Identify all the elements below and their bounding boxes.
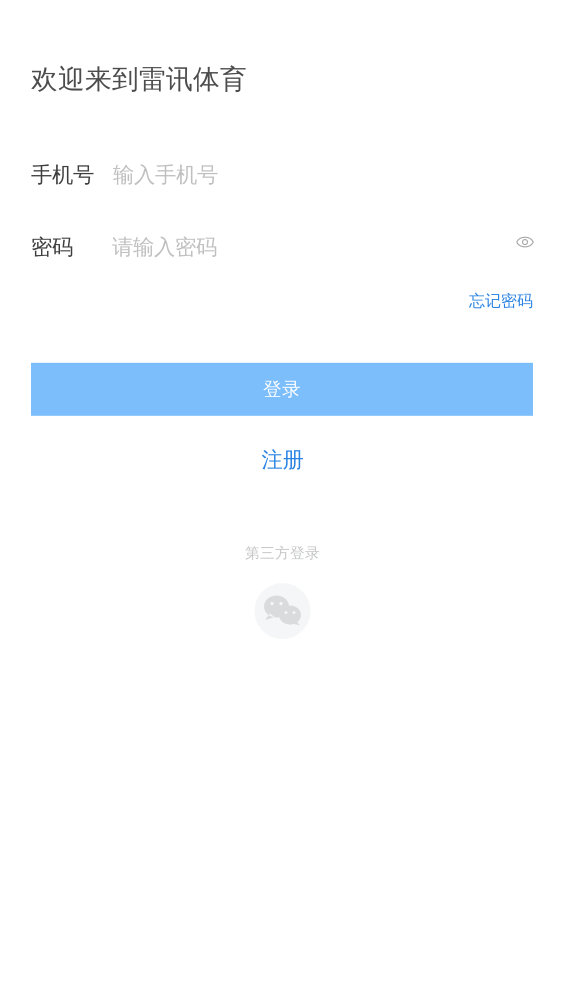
button[interactable]: 微信登录 — [254, 583, 310, 639]
staticText: 登录 — [263, 378, 301, 401]
staticText: 请输入密码 — [112, 234, 217, 260]
staticText: 忘记密码 — [469, 291, 533, 311]
button[interactable]: 忘记密码 — [469, 291, 533, 311]
button[interactable]: 手机号 — [31, 162, 534, 188]
staticText: 注册 — [261, 447, 303, 473]
staticText: 第三方登录 — [245, 544, 320, 562]
button[interactable]: 注册 — [261, 447, 303, 473]
button[interactable]: 显示密码 — [516, 235, 534, 249]
staticText: 手机号 — [31, 162, 94, 188]
staticText: 密码 — [31, 234, 73, 260]
staticText: 欢迎来到雷讯体育 — [31, 63, 247, 96]
button[interactable]: 密码 — [31, 234, 516, 260]
button[interactable]: 登录 — [31, 363, 533, 416]
staticText: 输入手机号 — [113, 162, 218, 188]
